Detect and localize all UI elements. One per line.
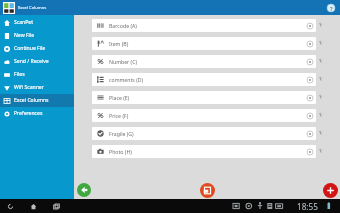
button[interactable]: Recents [49,199,63,213]
staticText: ScanPet [14,19,34,26]
button[interactable]: Back [77,183,91,197]
button[interactable]: Wifi Scanner [0,81,74,94]
staticText: Files [14,71,25,78]
button[interactable]: Info [305,147,314,156]
button[interactable]: Excel Columns [0,94,74,107]
staticText: Barcode (A) [109,22,137,29]
button[interactable]: Number (C) [92,55,316,68]
staticText: Item (B) [109,40,129,47]
staticText: Continue File [14,45,46,52]
button[interactable]: Info [305,21,314,30]
button[interactable]: Continue File [0,42,74,55]
button[interactable]: Save [200,183,215,198]
button[interactable]: Back [3,199,17,213]
button[interactable]: Home [26,199,40,213]
staticText: comments (D) [109,76,144,83]
button[interactable]: Item (B) [92,37,316,50]
button[interactable]: Photo (H) [92,145,316,158]
button[interactable]: New File [0,29,74,42]
button[interactable]: Info [305,111,314,120]
button[interactable]: Price (F) [92,109,316,122]
button[interactable]: Help [325,2,337,14]
button[interactable]: ScanPet [0,16,74,29]
staticText: Number (C) [109,58,137,65]
button[interactable]: Info [305,75,314,84]
staticText: Excel Columns [14,97,49,104]
staticText: Photo (H) [109,148,132,155]
button[interactable]: Send / Receive [0,55,74,68]
button[interactable]: Info [305,39,314,48]
staticText: Fragile (G) [109,130,134,137]
staticText: New File [14,32,35,39]
button[interactable]: Fragile (G) [92,127,316,140]
staticText: Place (E) [109,94,130,101]
staticText: ? [330,5,333,12]
button[interactable]: Place (E) [92,91,316,104]
button[interactable]: Info [305,129,314,138]
staticText: Preferences [14,110,43,117]
button[interactable]: Info [305,93,314,102]
staticText: Price (F) [109,112,129,119]
staticText: 18:55 [297,201,318,212]
button[interactable]: Barcode (A) [92,19,316,32]
button[interactable]: Info [305,57,314,66]
button[interactable]: Add [323,183,338,198]
button[interactable]: Preferences [0,107,74,120]
button[interactable]: comments (D) [92,73,316,86]
staticText: Wifi Scanner [14,84,44,91]
button[interactable]: Files [0,68,74,81]
staticText: Excel Columns [18,5,47,11]
staticText: Send / Receive [14,58,49,65]
